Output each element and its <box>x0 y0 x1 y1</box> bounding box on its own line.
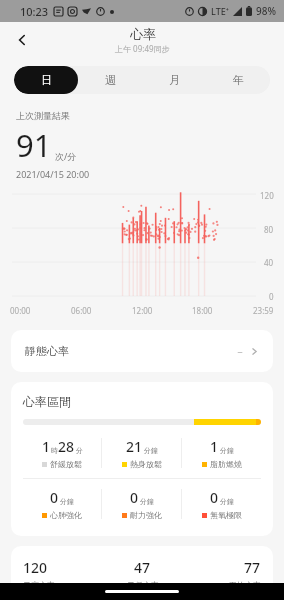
staticText: 耐力強化 <box>130 510 162 520</box>
button[interactable]: 120 <box>23 558 103 588</box>
button[interactable]: 日 <box>14 66 78 94</box>
button[interactable]: Back <box>6 24 38 56</box>
staticText: 1 <box>210 437 219 456</box>
staticText: 分鐘 <box>144 446 158 455</box>
staticText: 18:00 <box>192 305 213 316</box>
staticText: 40 <box>264 257 274 268</box>
staticText: 分鐘 <box>220 497 234 506</box>
staticText: 靜態心率 <box>25 344 69 358</box>
button[interactable]: 0 <box>182 488 261 520</box>
staticText: 06:00 <box>71 305 92 316</box>
staticText: 23:59 <box>253 305 274 316</box>
staticText: 分鐘 <box>220 446 234 455</box>
staticText: 分鐘 <box>140 497 154 506</box>
button[interactable]: 1 <box>23 437 101 469</box>
staticText: 分 <box>76 446 83 455</box>
staticText: 10:23 <box>20 4 49 19</box>
button[interactable]: 靜態心率 <box>11 330 273 372</box>
button[interactable]: 1 <box>182 437 261 469</box>
button[interactable]: 47 <box>103 558 182 588</box>
staticText: 平均心率 <box>229 580 261 588</box>
staticText: 上次測量結果 <box>16 110 70 121</box>
staticText: 時 <box>51 446 58 455</box>
staticText: 47 <box>134 558 151 577</box>
staticText: 月 <box>169 73 180 87</box>
staticText: 1 <box>42 437 51 456</box>
staticText: 21 <box>126 437 143 456</box>
staticText: 最高心率 <box>23 580 55 588</box>
staticText: 無氧極限 <box>210 510 242 520</box>
staticText: 心率 <box>130 26 156 42</box>
staticText: 心率區間 <box>23 394 71 409</box>
button[interactable]: 月 <box>142 66 206 94</box>
staticText: LTE⁺ <box>211 5 229 17</box>
button[interactable]: 0 <box>23 488 101 520</box>
button[interactable]: 77 <box>182 558 261 588</box>
staticText: 0 <box>210 488 219 507</box>
button[interactable]: 0 <box>102 488 181 520</box>
staticText: 日 <box>41 73 52 87</box>
staticText: 2021/04/15 20:00 <box>16 168 90 180</box>
staticText: 120 <box>260 190 274 201</box>
staticText: 98% <box>256 4 276 18</box>
staticText: 77 <box>244 558 261 577</box>
staticText: 最低心率 <box>127 580 159 588</box>
staticText: 0 <box>130 488 139 507</box>
button[interactable]: 年 <box>206 66 270 94</box>
staticText: 週 <box>105 73 116 87</box>
staticText: 上午 09:49同步 <box>115 43 170 54</box>
button[interactable]: 週 <box>78 66 142 94</box>
staticText: 年 <box>233 73 244 87</box>
staticText: 12:00 <box>132 305 153 316</box>
staticText: 28 <box>58 437 75 456</box>
staticText: 分鐘 <box>60 497 74 506</box>
staticText: 91 <box>16 124 52 166</box>
staticText: 80 <box>264 224 274 235</box>
staticText: － <box>235 345 245 358</box>
staticText: 00:00 <box>10 305 31 316</box>
staticText: 舒緩放鬆 <box>50 459 82 469</box>
button[interactable]: 21 <box>102 437 181 469</box>
staticText: 0 <box>269 291 274 302</box>
staticText: 0 <box>50 488 59 507</box>
staticText: 脂肪燃燒 <box>210 459 242 469</box>
staticText: 次/分 <box>55 150 77 162</box>
staticText: 120 <box>23 558 48 577</box>
staticText: 熱身放鬆 <box>130 459 162 469</box>
staticText: 心肺強化 <box>50 510 82 520</box>
